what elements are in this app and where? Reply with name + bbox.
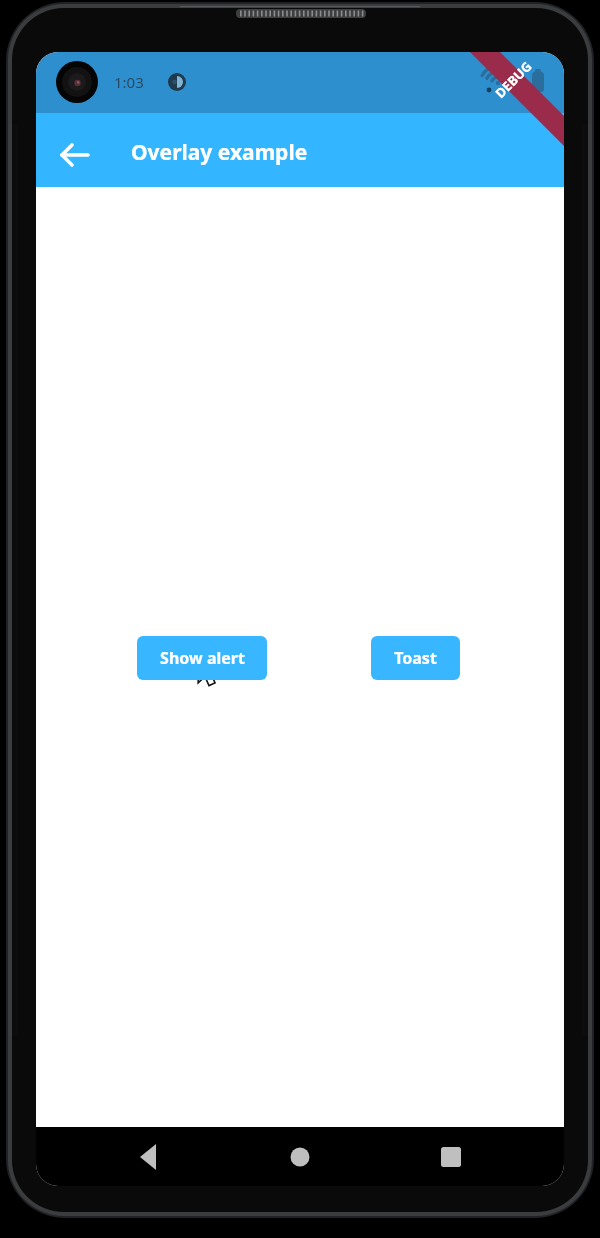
button[interactable]: Recent apps bbox=[418, 1133, 486, 1183]
staticText: Overlay example bbox=[131, 138, 308, 167]
staticText: 1:03 bbox=[114, 72, 144, 92]
staticText: DEBUG bbox=[491, 57, 536, 102]
button[interactable]: Show alert bbox=[137, 636, 267, 680]
staticText: Toast bbox=[394, 647, 437, 669]
button[interactable]: Toast bbox=[371, 636, 460, 680]
staticText: Show alert bbox=[160, 647, 245, 669]
button[interactable]: Back bbox=[114, 1133, 182, 1183]
button[interactable]: Back bbox=[48, 127, 104, 183]
button[interactable]: Home bbox=[266, 1133, 334, 1183]
